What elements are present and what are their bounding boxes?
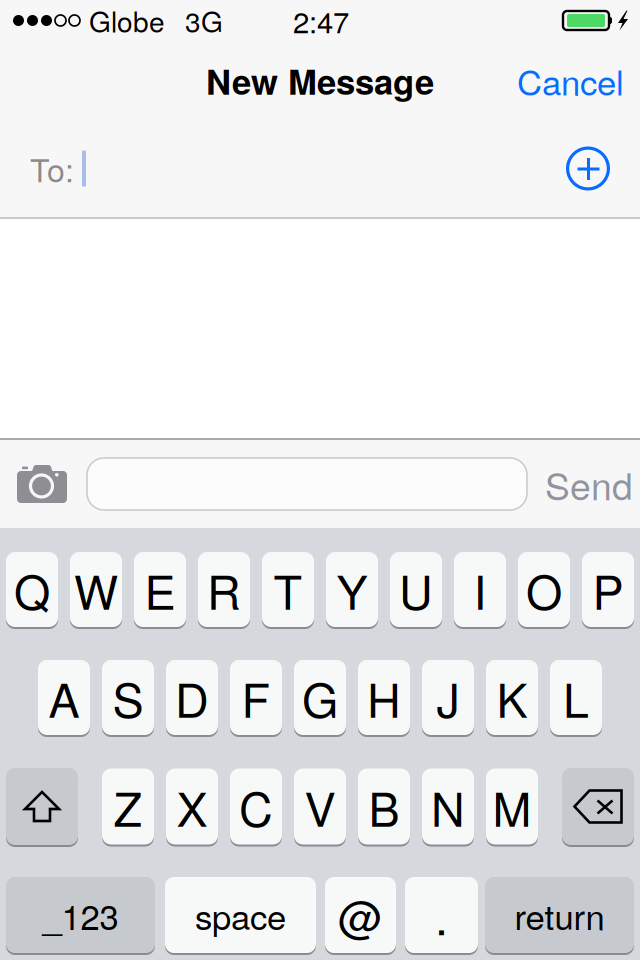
staticText: V [304, 773, 335, 840]
button[interactable]: H [358, 660, 410, 735]
staticText: Globe [89, 0, 165, 41]
button[interactable]: . [405, 877, 478, 953]
button[interactable]: Add contact [560, 140, 616, 196]
button[interactable]: M [486, 768, 538, 844]
button[interactable]: P [582, 552, 634, 627]
button[interactable]: I [454, 552, 506, 627]
staticText: L [563, 664, 589, 731]
staticText: Z [113, 773, 142, 840]
staticText: I [473, 556, 486, 623]
button[interactable]: O [518, 552, 570, 627]
button[interactable]: Shift [6, 768, 78, 845]
staticText: F [241, 664, 270, 731]
button[interactable]: E [134, 552, 186, 627]
staticText: . [435, 882, 448, 948]
staticText: R [207, 556, 241, 623]
button[interactable]: Q [6, 552, 58, 627]
button[interactable]: V [294, 768, 346, 844]
staticText: Y [336, 556, 367, 623]
button[interactable]: _123 [6, 877, 155, 953]
staticText: T [273, 556, 302, 623]
button[interactable]: Cancel [501, 39, 640, 121]
staticText: @ [338, 883, 383, 946]
staticText: E [144, 556, 175, 623]
button[interactable]: Camera [17, 461, 67, 507]
button[interactable]: space [165, 877, 316, 953]
staticText: A [48, 664, 79, 731]
button[interactable]: J [422, 660, 474, 735]
staticText: J [436, 664, 459, 731]
button[interactable]: X [166, 768, 218, 844]
button[interactable]: F [230, 660, 282, 735]
button[interactable]: D [166, 660, 218, 735]
staticText: P [592, 556, 623, 623]
staticText: B [368, 773, 399, 840]
staticText: O [526, 556, 562, 623]
staticText: H [367, 664, 401, 731]
button[interactable]: return [485, 877, 634, 953]
staticText: _123 [42, 890, 118, 940]
staticText: K [496, 664, 527, 731]
staticText: 2:47 [293, 0, 349, 41]
button[interactable]: @ [325, 877, 396, 953]
staticText: Cancel [517, 56, 624, 105]
button[interactable]: T [262, 552, 314, 627]
staticText: 3G [185, 0, 223, 41]
button[interactable]: L [550, 660, 602, 735]
button[interactable]: C [230, 768, 282, 844]
staticText: X [176, 773, 207, 840]
staticText: N [431, 773, 465, 840]
staticText: D [175, 664, 209, 731]
button[interactable]: Delete [562, 768, 634, 845]
button[interactable]: W [70, 552, 122, 627]
button[interactable]: S [102, 660, 154, 735]
staticText: U [399, 556, 433, 623]
button[interactable]: A [38, 660, 90, 735]
staticText: W [74, 556, 118, 623]
staticText: return [514, 890, 604, 940]
button[interactable]: N [422, 768, 474, 844]
button[interactable]: Y [326, 552, 378, 627]
staticText: S [112, 664, 143, 731]
button[interactable]: Send [545, 458, 633, 510]
staticText: C [239, 773, 273, 840]
staticText: space [195, 890, 286, 940]
button[interactable]: R [198, 552, 250, 627]
button[interactable]: B [358, 768, 410, 844]
staticText: New Message [206, 56, 434, 105]
staticText: M [492, 773, 531, 840]
staticText: G [302, 664, 338, 731]
staticText: Q [14, 556, 50, 623]
button[interactable]: K [486, 660, 538, 735]
staticText: Send [545, 457, 633, 511]
button[interactable]: G [294, 660, 346, 735]
staticText: To: [30, 146, 74, 191]
button[interactable]: Z [102, 768, 154, 844]
button[interactable]: U [390, 552, 442, 627]
